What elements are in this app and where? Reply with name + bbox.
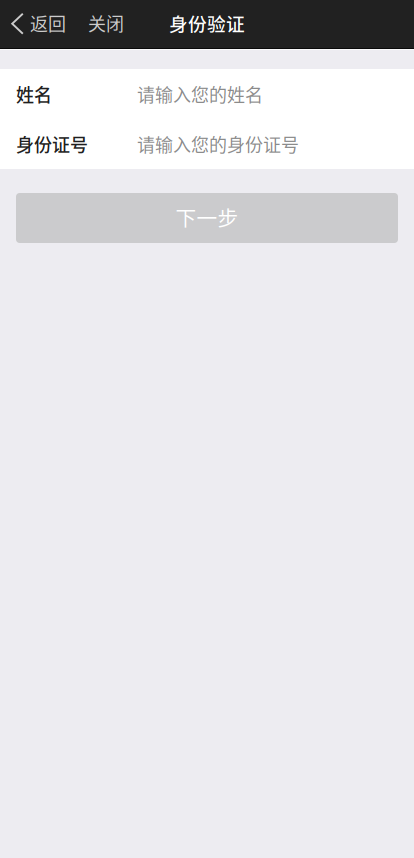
- staticText: 请输入您的姓名: [137, 81, 263, 107]
- button[interactable]: 关闭: [76, 0, 136, 48]
- button[interactable]: 身份证号: [0, 119, 414, 169]
- staticText: 返回: [30, 10, 66, 36]
- staticText: 姓名: [16, 81, 52, 107]
- button[interactable]: 返回: [0, 0, 76, 48]
- staticText: 身份验证: [169, 9, 245, 36]
- staticText: 下一步: [175, 202, 238, 232]
- staticText: 请输入您的身份证号: [137, 131, 299, 157]
- staticText: 关闭: [88, 10, 124, 36]
- staticText: 身份证号: [16, 131, 88, 157]
- button[interactable]: 下一步: [16, 193, 398, 243]
- button[interactable]: 姓名: [0, 69, 414, 119]
